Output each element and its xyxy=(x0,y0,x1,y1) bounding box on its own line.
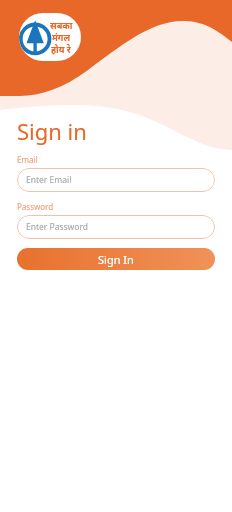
staticText: होय रे xyxy=(51,43,71,55)
button[interactable]: Enter Email xyxy=(17,168,215,192)
staticText: सबका xyxy=(50,19,73,31)
staticText: Sign in xyxy=(17,116,87,146)
other: Sabka Mangal Hoy Re logo xyxy=(19,13,81,61)
staticText: Enter Email xyxy=(26,174,72,186)
staticText: मंगल xyxy=(52,31,71,43)
button[interactable]: Enter Password xyxy=(17,215,215,239)
staticText: Password xyxy=(17,201,54,212)
button[interactable]: Sign In xyxy=(17,248,215,270)
staticText: Enter Password xyxy=(26,221,89,233)
staticText: Sign In xyxy=(98,252,134,267)
staticText: Email xyxy=(17,154,38,165)
